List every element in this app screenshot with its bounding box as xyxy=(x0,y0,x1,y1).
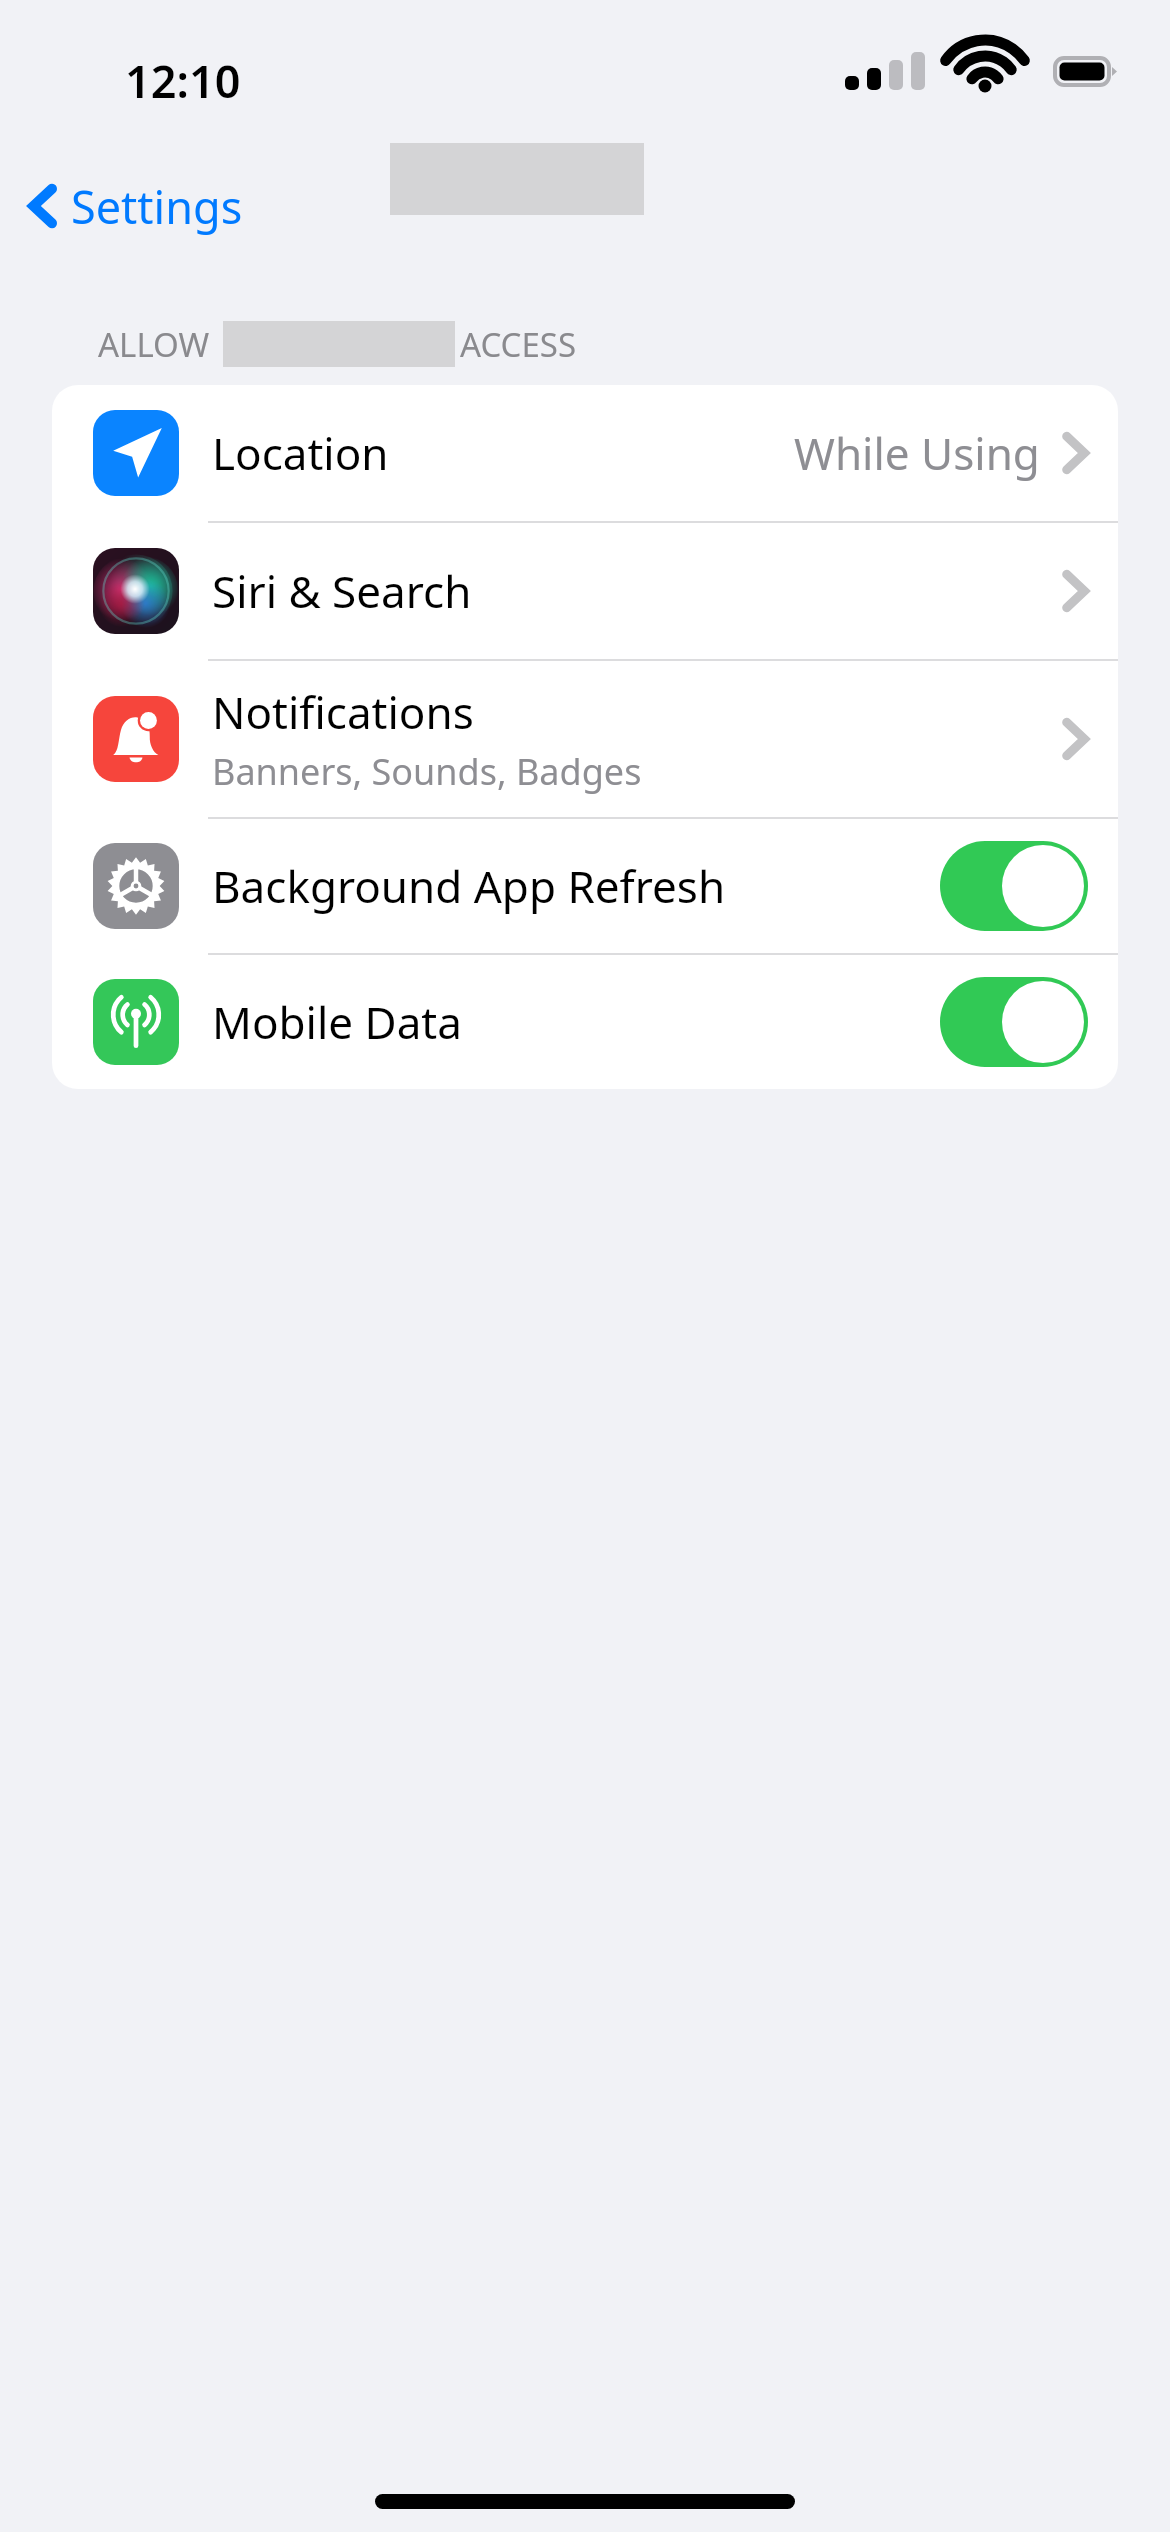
button[interactable]: Notifications xyxy=(52,661,1118,817)
staticText: Banners, Sounds, Badges xyxy=(212,747,642,796)
button[interactable]: Siri & Search xyxy=(52,523,1118,659)
staticText: 12:10 xyxy=(125,50,241,100)
button[interactable]: On xyxy=(940,841,1088,931)
button[interactable]: Settings xyxy=(18,168,253,244)
button[interactable]: Mobile Data xyxy=(52,955,1118,1089)
button[interactable]: Background App Refresh xyxy=(52,819,1118,953)
staticText: Settings xyxy=(71,176,243,237)
staticText: ALLOW xyxy=(98,322,210,367)
button[interactable]: Location xyxy=(52,385,1118,521)
staticText: Notifications xyxy=(212,682,474,742)
staticText: Siri & Search xyxy=(212,561,472,621)
staticText: ACCESS xyxy=(460,322,577,367)
button[interactable]: On xyxy=(940,977,1088,1067)
staticText: Mobile Data xyxy=(212,992,462,1052)
staticText: Background App Refresh xyxy=(212,856,726,916)
staticText: Location xyxy=(212,423,389,483)
staticText: While Using xyxy=(794,423,1040,483)
